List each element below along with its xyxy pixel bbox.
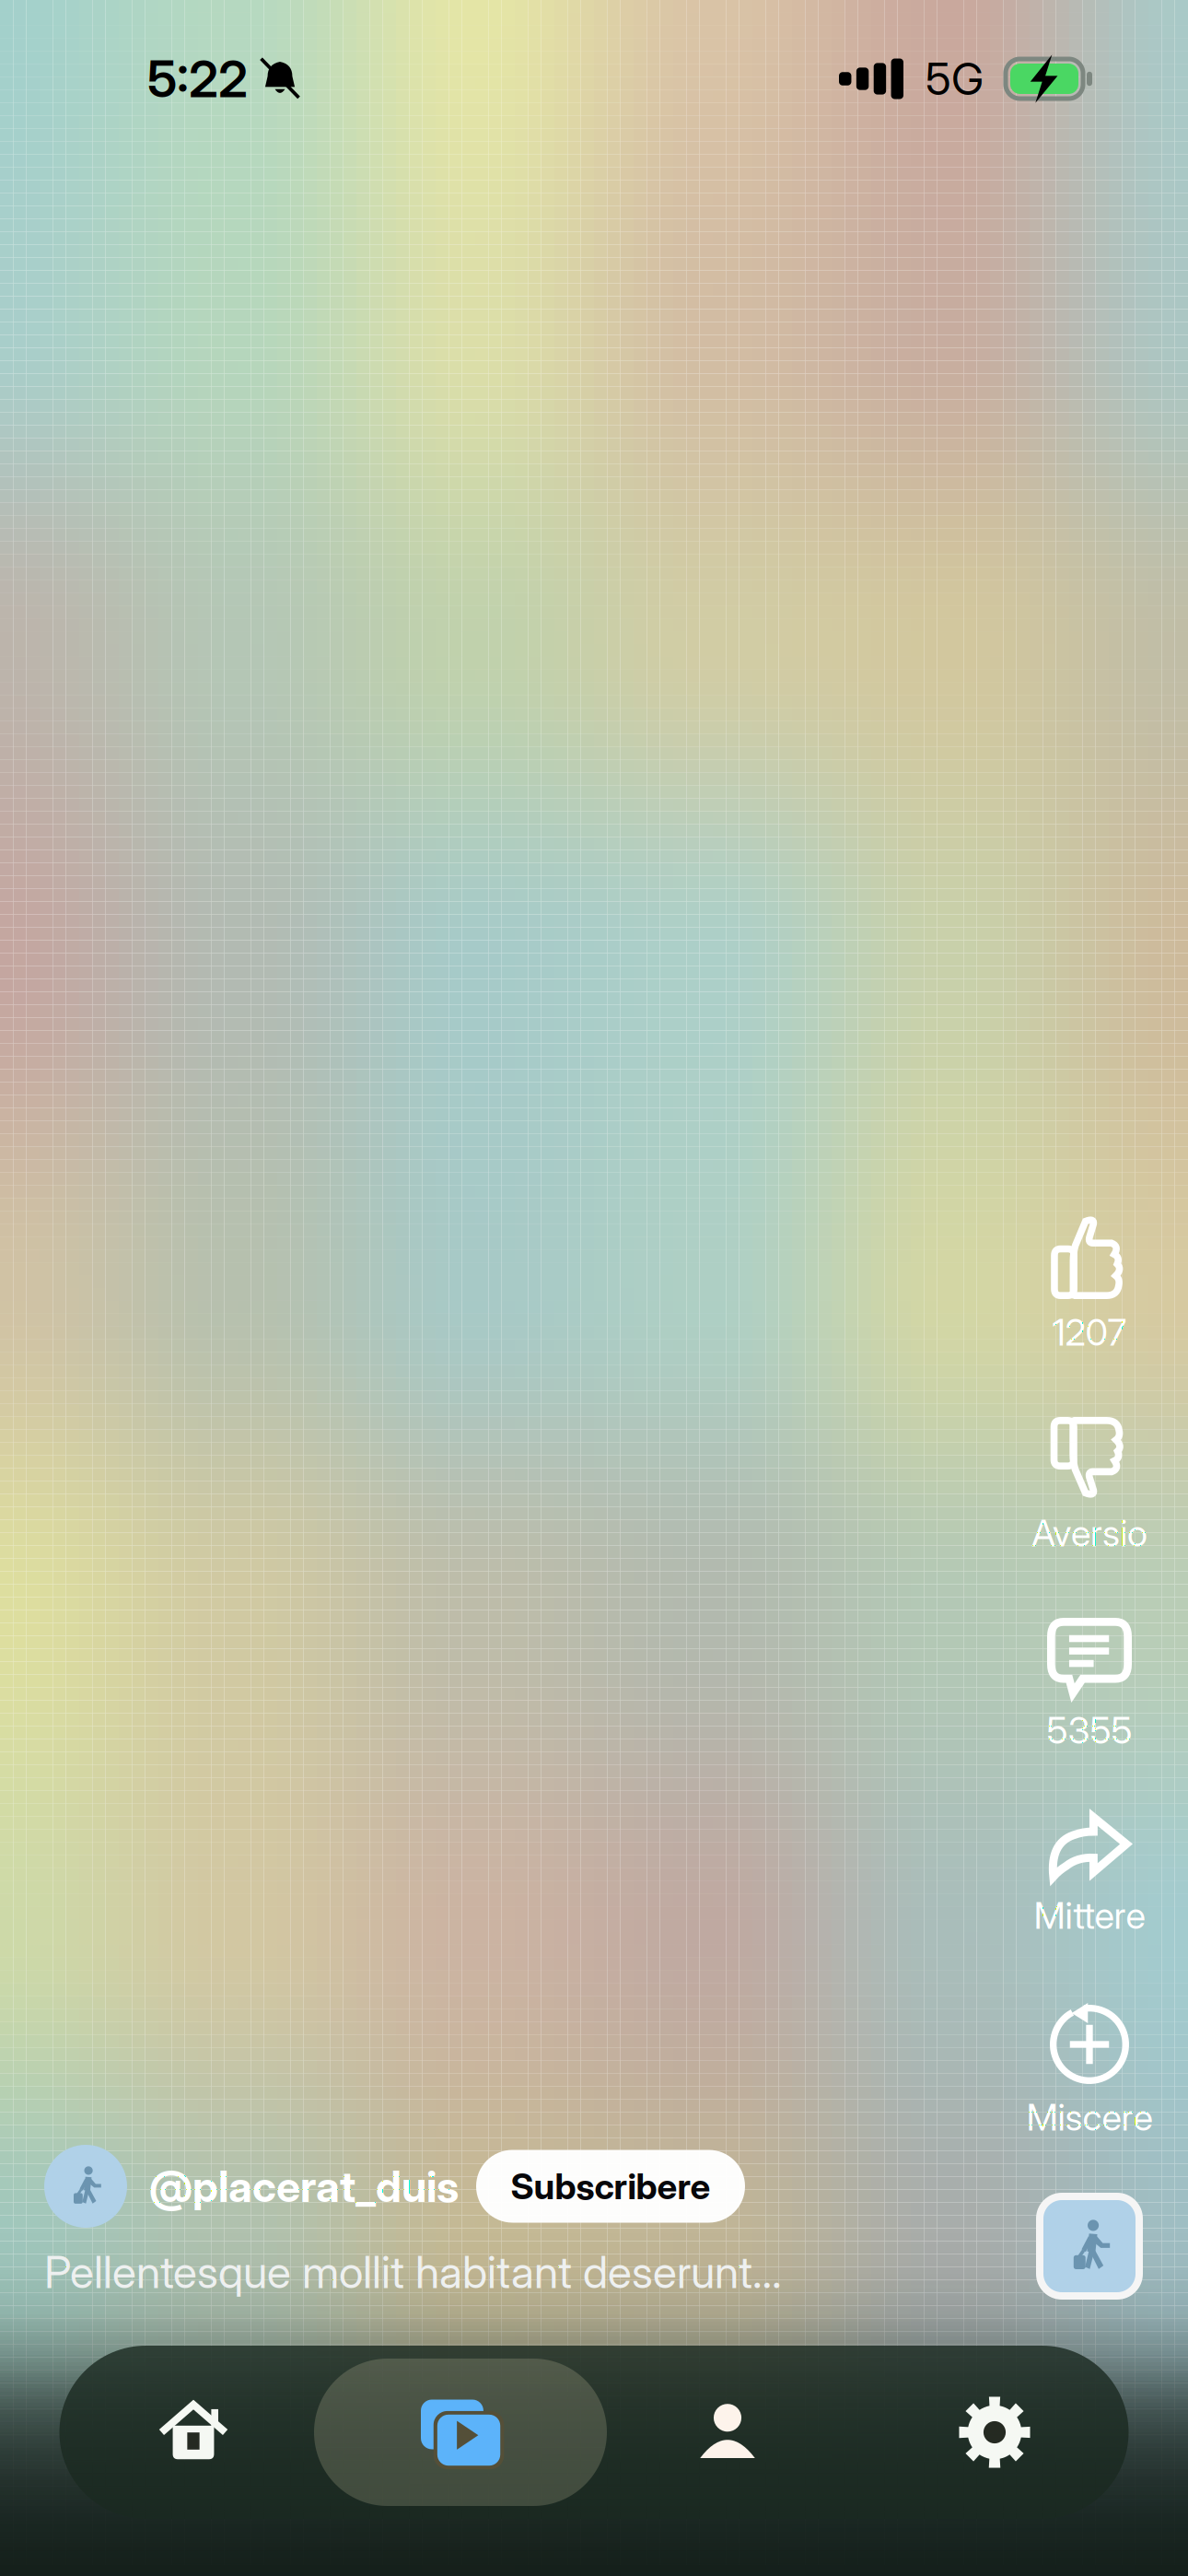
staticText: Mittere: [1034, 1893, 1145, 1938]
staticText: Pellentesque mollit habitant deserunt…: [44, 2245, 782, 2299]
button[interactable]: Home: [60, 2348, 327, 2517]
button[interactable]: Miscere: [991, 2003, 1188, 2139]
staticText: 1207: [1052, 1310, 1127, 1355]
staticText: Aversio: [1031, 1511, 1147, 1555]
staticText: @placerat_duis: [149, 2160, 459, 2212]
staticText: 5:22: [147, 48, 248, 109]
button[interactable]: 1207: [991, 1214, 1188, 1354]
button[interactable]: Aversio: [991, 1417, 1188, 1555]
button[interactable]: Shorts: [327, 2346, 594, 2519]
button[interactable]: Subscribere: [476, 2145, 745, 2228]
staticText: 5355: [1047, 1708, 1132, 1753]
button[interactable]: Original sound: [991, 2193, 1188, 2300]
button[interactable]: @placerat_duis: [44, 2145, 476, 2228]
button[interactable]: Profile: [594, 2348, 861, 2517]
button[interactable]: Mittere: [991, 1813, 1188, 1938]
staticText: Miscere: [1026, 2095, 1153, 2139]
staticText: 5G: [926, 52, 984, 106]
button[interactable]: Settings: [861, 2348, 1128, 2517]
staticText: Subscribere: [511, 2165, 710, 2208]
button[interactable]: 5355: [991, 1618, 1188, 1752]
